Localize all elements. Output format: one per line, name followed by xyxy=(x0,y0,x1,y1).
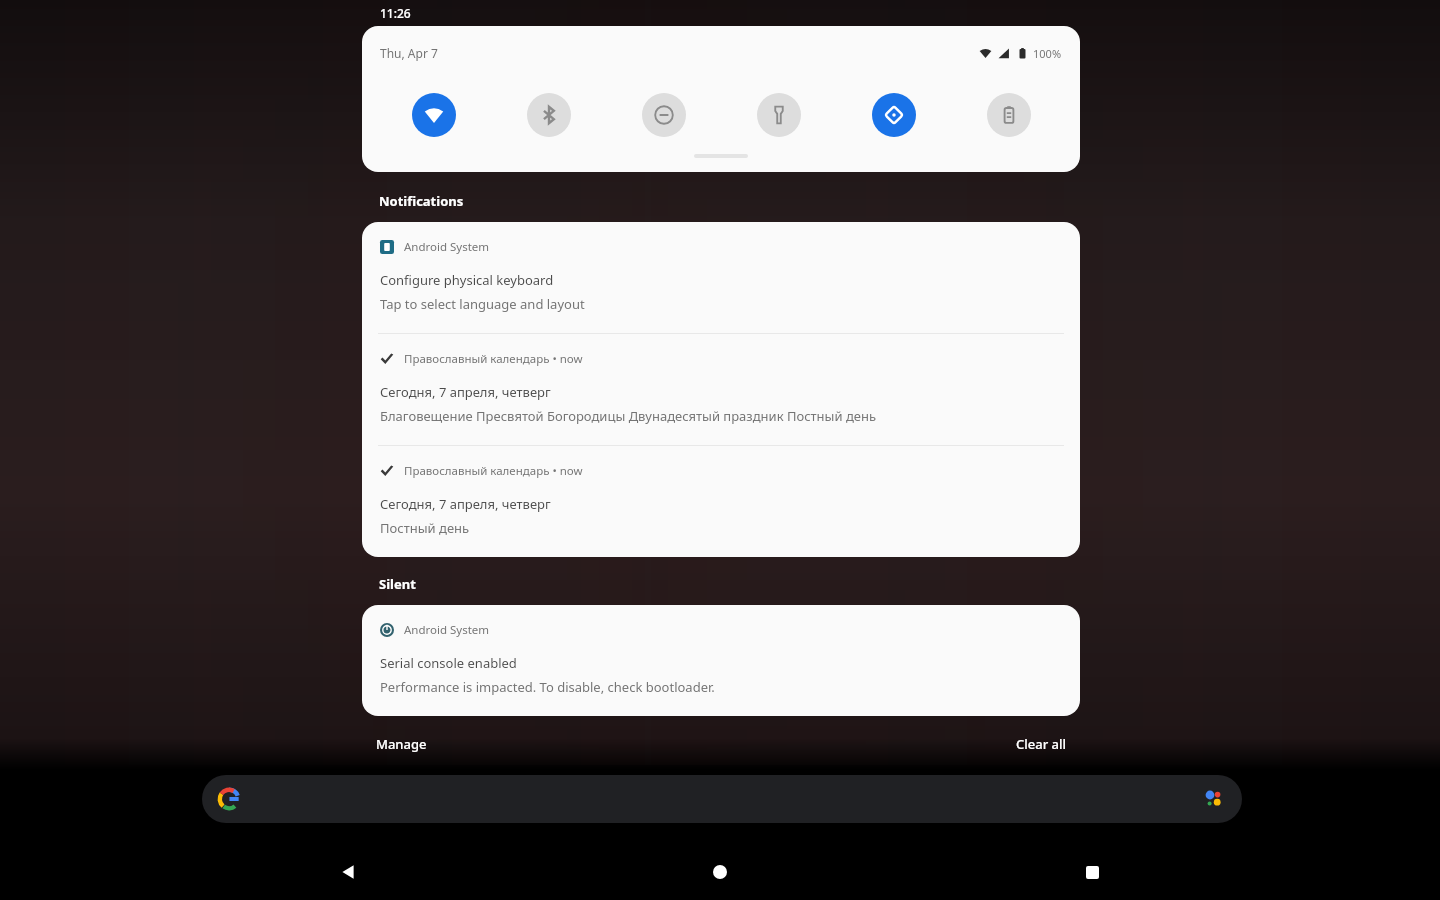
staticText: Сегодня, 7 апреля, четверг xyxy=(380,495,551,513)
staticText: Постный день xyxy=(380,519,470,537)
staticText: Configure physical keyboard xyxy=(380,271,554,289)
staticText: Благовещение Пресвятой Богородицы Двунад… xyxy=(380,407,877,425)
staticText: 100% xyxy=(1033,46,1062,61)
button[interactable]: Battery Saver xyxy=(987,93,1031,137)
button[interactable]: Bluetooth xyxy=(527,93,571,137)
staticText: Tap to select language and layout xyxy=(380,295,585,313)
staticText: Thu, Apr 7 xyxy=(380,45,438,61)
button[interactable]: Manage xyxy=(362,729,441,759)
button[interactable]: Do Not Disturb xyxy=(642,93,686,137)
staticText: Android System xyxy=(404,622,490,638)
button[interactable]: Back xyxy=(324,848,372,896)
staticText: Android System xyxy=(404,239,490,255)
staticText: Serial console enabled xyxy=(380,654,517,672)
button[interactable]: Android System xyxy=(362,222,1080,333)
button[interactable]: Православный календарь • now xyxy=(362,446,1080,557)
staticText: Clear all xyxy=(1016,735,1066,753)
staticText: Manage xyxy=(376,735,427,753)
staticText: 11:26 xyxy=(380,5,411,21)
button[interactable]: Clear all xyxy=(1002,729,1080,759)
staticText: Сегодня, 7 апреля, четверг xyxy=(380,383,551,401)
staticText: Православный календарь • now xyxy=(404,351,583,367)
button[interactable]: Home xyxy=(696,848,744,896)
staticText: Performance is impacted. To disable, che… xyxy=(380,678,715,696)
staticText: Православный календарь • now xyxy=(404,463,583,479)
button[interactable]: Internet xyxy=(412,93,456,137)
staticText: Notifications xyxy=(379,192,464,210)
button[interactable]: Android System xyxy=(362,605,1080,716)
button[interactable]: Recents xyxy=(1068,848,1116,896)
staticText: Silent xyxy=(379,575,416,593)
button[interactable]: Православный календарь • now xyxy=(362,334,1080,445)
button[interactable]: Flashlight xyxy=(757,93,801,137)
button[interactable]: Auto rotate xyxy=(872,93,916,137)
button[interactable]: Search xyxy=(202,775,1242,823)
